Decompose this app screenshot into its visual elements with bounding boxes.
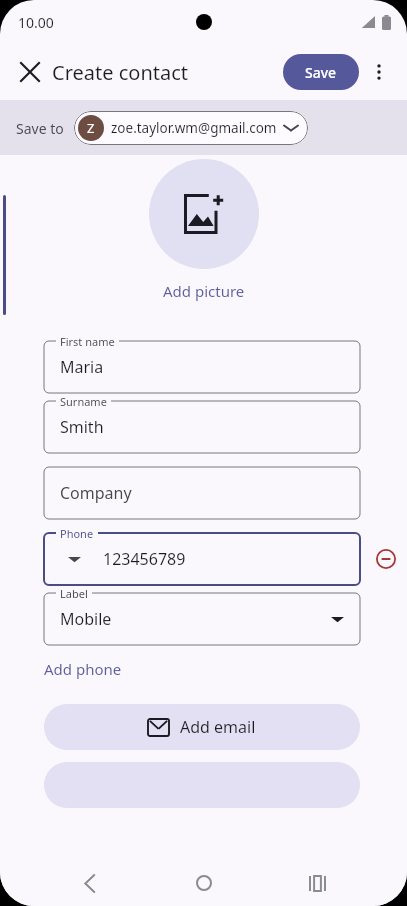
staticText: Add phone bbox=[44, 659, 122, 679]
staticText: Add picture bbox=[163, 281, 245, 301]
button[interactable]: Add picture bbox=[149, 159, 259, 269]
staticText: Smith bbox=[60, 416, 104, 438]
staticText: Add email bbox=[180, 716, 256, 738]
staticText: Create contact bbox=[52, 59, 189, 86]
button[interactable]: Remove phone bbox=[368, 541, 404, 577]
button[interactable]: Maria bbox=[44, 341, 360, 393]
staticText: Company bbox=[60, 482, 132, 504]
button[interactable]: Add phone bbox=[44, 659, 122, 679]
staticText: Maria bbox=[60, 356, 104, 378]
button[interactable]: Add picture bbox=[163, 281, 245, 301]
button[interactable]: Add email bbox=[44, 704, 360, 750]
staticText: Phone bbox=[60, 526, 94, 541]
button[interactable] bbox=[44, 762, 360, 808]
button[interactable]: Recents bbox=[293, 860, 341, 906]
button[interactable]: Z bbox=[74, 111, 308, 145]
staticText: 123456789 bbox=[103, 548, 186, 570]
button[interactable]: Company bbox=[44, 467, 360, 519]
button[interactable]: Close bbox=[8, 50, 52, 94]
button[interactable]: Save bbox=[283, 54, 359, 90]
staticText: Save bbox=[305, 63, 337, 82]
button[interactable]: Home bbox=[180, 860, 228, 906]
staticText: First name bbox=[60, 334, 115, 349]
button[interactable]: More options bbox=[359, 52, 399, 92]
button[interactable]: Back bbox=[66, 860, 114, 906]
staticText: Surname bbox=[60, 394, 107, 409]
staticText: Mobile bbox=[60, 608, 112, 630]
button[interactable]: 123456789 bbox=[44, 533, 360, 585]
staticText: Save to bbox=[16, 119, 64, 138]
staticText: zoe.taylor.wm@gmail.com bbox=[111, 119, 277, 137]
button[interactable]: Smith bbox=[44, 401, 360, 453]
staticText: 10.00 bbox=[18, 13, 54, 32]
button[interactable]: Mobile bbox=[44, 593, 360, 645]
staticText: Label bbox=[60, 586, 88, 601]
staticText: Z bbox=[87, 119, 95, 137]
